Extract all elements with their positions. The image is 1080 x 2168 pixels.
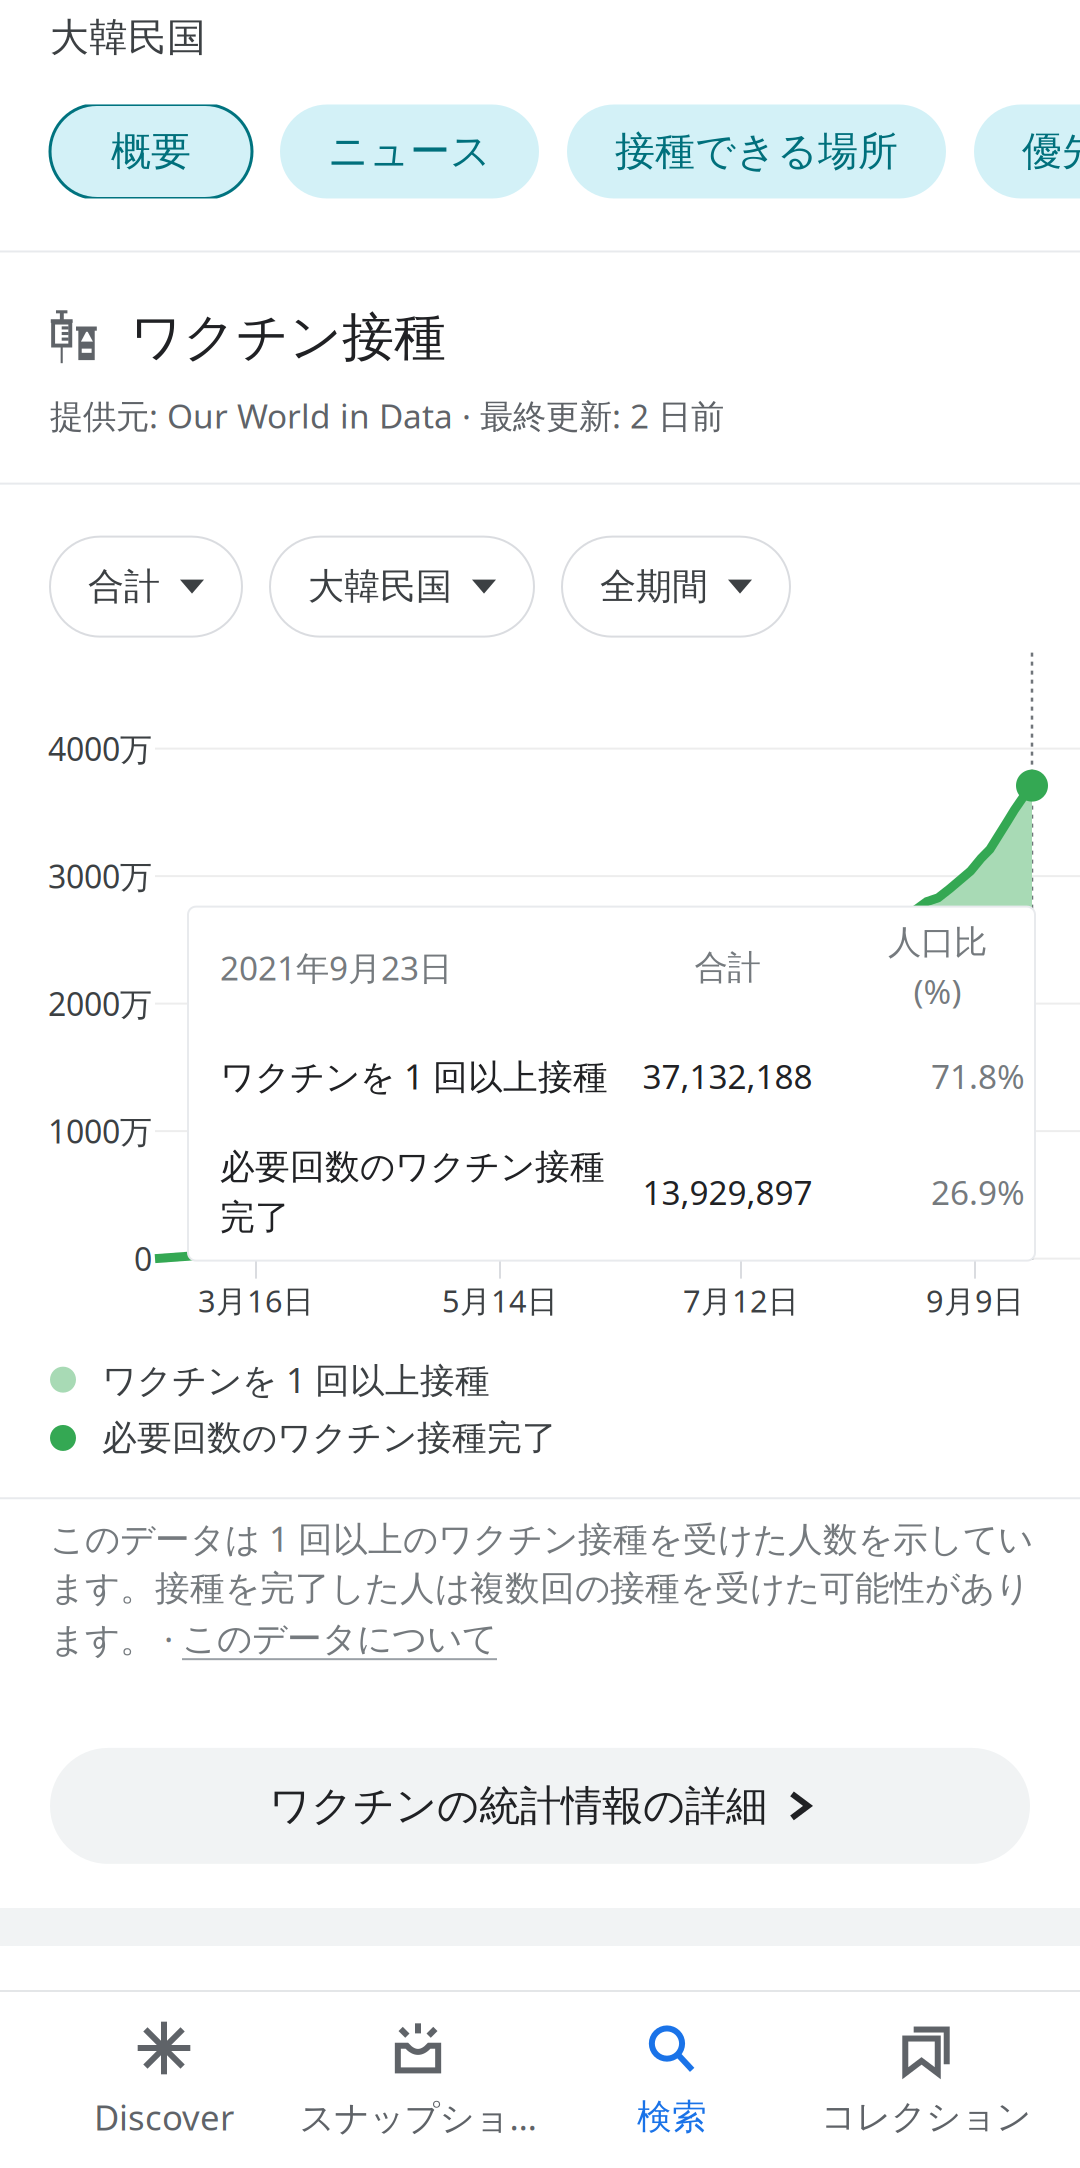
staticText: 検索	[637, 2096, 707, 2138]
staticText: 3月16日	[198, 1280, 314, 1321]
staticText: 37,132,188	[642, 1054, 812, 1098]
staticText: 5月14日	[442, 1280, 558, 1321]
button[interactable]: 概要	[50, 104, 252, 198]
button[interactable]: スナップショ…	[291, 1992, 545, 2168]
staticText: 優先接種	[1022, 127, 1080, 176]
staticText: 13,929,897	[642, 1170, 812, 1214]
staticText: ます。接種を完了した人は複数回の接種を受けた可能性があり	[50, 1567, 1030, 1610]
staticText: 2000万	[48, 982, 152, 1025]
button[interactable]: コレクション	[799, 1992, 1053, 2168]
button[interactable]: 検索	[545, 1992, 799, 2168]
button[interactable]: ワクチンの統計情報の詳細	[50, 1748, 1030, 1864]
staticText: コレクション	[821, 2096, 1031, 2138]
button[interactable]: 全期間	[562, 537, 790, 637]
button[interactable]: 大韓民国	[270, 537, 534, 637]
staticText: 26.9%	[931, 1170, 1025, 1214]
staticText: 合計	[88, 564, 160, 609]
staticText: 9月9日	[926, 1280, 1024, 1321]
staticText: 提供元: Our World in Data · 最終更新: 2 日前	[50, 393, 724, 438]
staticText: 大韓民国	[50, 14, 206, 61]
staticText: 大韓民国	[308, 564, 452, 609]
staticText: ニュース	[328, 127, 491, 176]
staticText: 完了	[220, 1196, 290, 1239]
staticText: 全期間	[600, 564, 708, 609]
staticText: ワクチンの統計情報の詳細	[269, 1780, 767, 1831]
staticText: 4000万	[48, 727, 152, 770]
staticText: 接種できる場所	[615, 127, 898, 176]
staticText: ワクチンを 1 回以上接種	[102, 1357, 490, 1403]
staticText: ます。 ·	[50, 1616, 182, 1662]
staticText: 0	[134, 1237, 152, 1280]
button[interactable]: Discover	[37, 1992, 291, 2168]
staticText: 3000万	[48, 855, 152, 897]
staticText: 合計	[694, 947, 760, 988]
button[interactable]: ニュース	[280, 104, 539, 198]
staticText: 必要回数のワクチン接種完了	[102, 1417, 557, 1459]
staticText: 人口比	[888, 922, 987, 963]
staticText: 1000万	[48, 1110, 152, 1152]
staticText: 71.8%	[931, 1054, 1025, 1098]
button[interactable]: 優先接種	[974, 104, 1080, 198]
staticText: このデータは 1 回以上のワクチン接種を受けた人数を示してい	[50, 1515, 1033, 1561]
staticText: 7月12日	[683, 1280, 799, 1321]
staticText: 必要回数のワクチン接種	[220, 1145, 605, 1188]
button[interactable]: 接種できる場所	[567, 104, 946, 198]
staticText: このデータについて	[182, 1618, 497, 1660]
staticText: スナップショ…	[299, 2094, 536, 2140]
staticText: ワクチン接種	[130, 305, 446, 369]
staticText: 2021年9月23日	[220, 945, 452, 990]
staticText: ワクチンを 1 回以上接種	[220, 1053, 608, 1099]
staticText: (%)	[913, 969, 961, 1013]
staticText: Discover	[94, 2094, 234, 2140]
staticText: 概要	[111, 127, 191, 176]
button[interactable]: 合計	[50, 537, 242, 637]
